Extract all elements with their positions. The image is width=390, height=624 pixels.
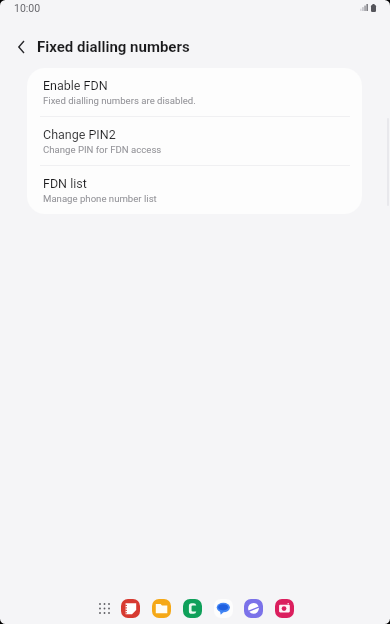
staticText: FDN list [43,176,87,191]
staticText: 10:00 [14,2,41,14]
button[interactable]: Internet [244,599,263,618]
staticText: Enable FDN [43,78,108,93]
staticText: Fixed dialling numbers are disabled. [43,95,196,106]
button[interactable]: Enable FDN [27,68,362,116]
button[interactable]: Samsung Notes [121,599,140,618]
button[interactable]: Navigate up [7,33,35,61]
staticText: Fixed dialling numbers [37,38,190,56]
button[interactable]: Change PIN2 [27,117,362,165]
button[interactable]: Apps [92,596,117,621]
button[interactable]: My Files [152,599,171,618]
button[interactable]: Messages [214,599,233,618]
staticText: Change PIN2 [43,127,116,142]
staticText: Manage phone number list [43,193,157,204]
button[interactable]: FDN list [27,166,362,214]
button[interactable]: Camera [275,599,294,618]
button[interactable]: Phone [183,599,202,618]
staticText: Change PIN for FDN access [43,144,162,155]
